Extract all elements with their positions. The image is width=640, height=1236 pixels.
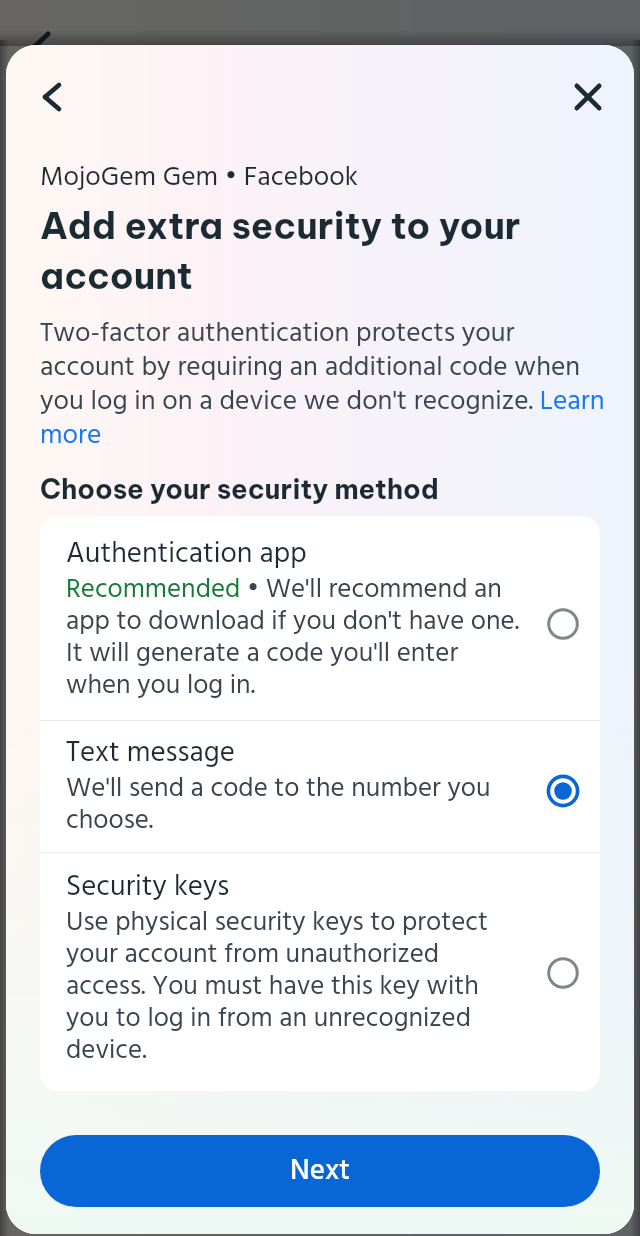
staticText: Security keys: [66, 864, 230, 910]
button[interactable]: Next: [40, 1135, 600, 1207]
staticText: Choose your security method: [40, 472, 439, 506]
button[interactable]: Security keys: [40, 853, 600, 1091]
staticText: Add extra security to your account: [40, 202, 622, 298]
button[interactable]: Back: [26, 71, 78, 123]
button[interactable]: Authentication app: [40, 516, 600, 720]
button[interactable]: Text message: [40, 721, 600, 852]
staticText: Next: [290, 1148, 351, 1194]
staticText: We'll send a code to the number you choo…: [66, 768, 491, 843]
staticText: Use physical security keys to protect yo…: [66, 902, 489, 1073]
staticText: Text message: [66, 730, 235, 776]
staticText: MojoGem Gem • Facebook: [40, 156, 358, 200]
staticText: Two-factor authentication protects your …: [40, 312, 605, 458]
button[interactable]: Close: [562, 71, 614, 123]
staticText: Recommended • We'll recommend an app to …: [66, 569, 520, 708]
staticText: Authentication app: [66, 531, 307, 577]
